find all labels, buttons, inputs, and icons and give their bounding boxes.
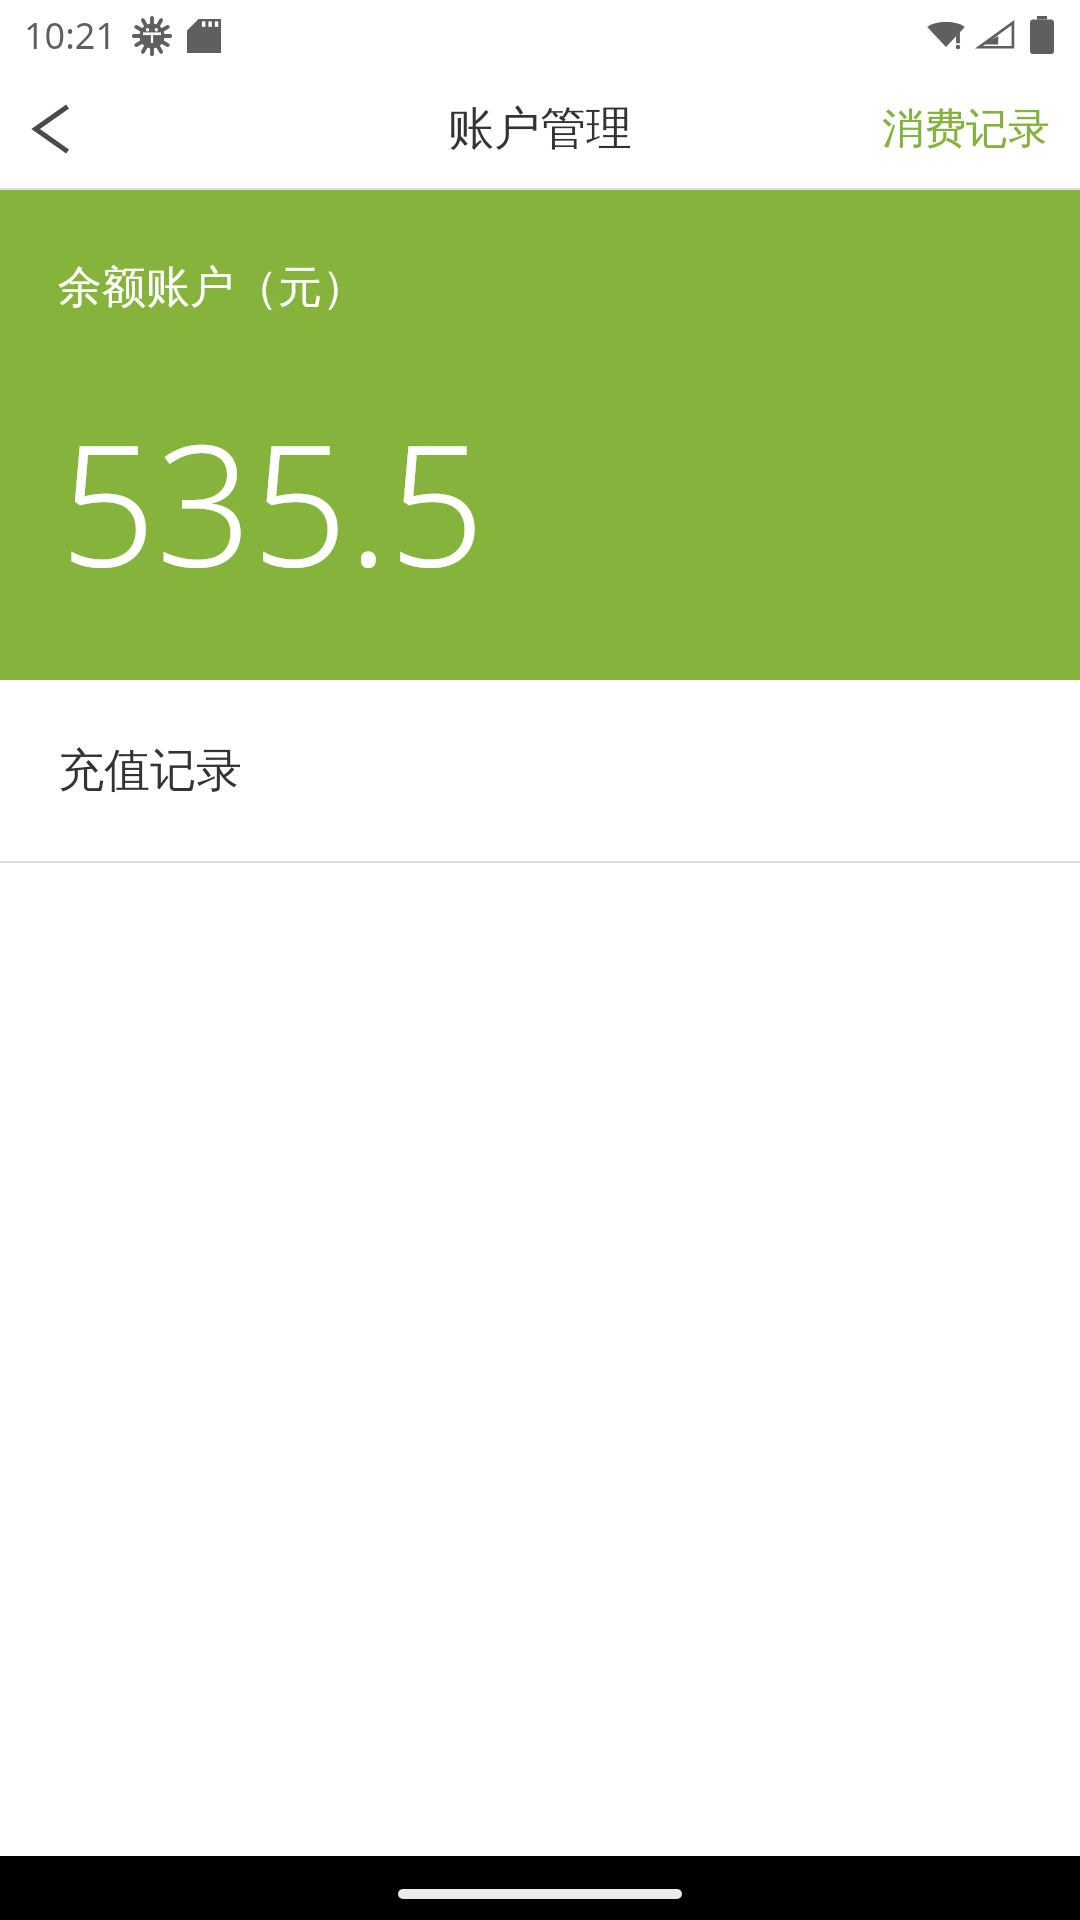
staticText: 消费记录 (882, 103, 1050, 156)
staticText: 10:21 (24, 11, 117, 60)
staticText: 账户管理 (448, 100, 632, 158)
staticText: 余额账户（元） (58, 260, 366, 315)
button[interactable]: Back (0, 70, 120, 188)
staticText: 充值记录 (58, 742, 242, 800)
button[interactable]: 消费记录 (852, 75, 1080, 184)
button[interactable]: 余额账户（元） (0, 190, 1080, 680)
staticText: 535.5 (60, 386, 485, 615)
button[interactable]: 充值记录 (0, 680, 1080, 861)
